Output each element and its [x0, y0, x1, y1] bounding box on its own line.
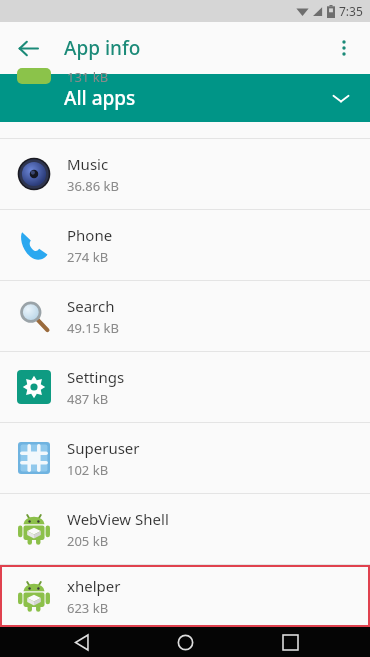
staticText: 102 kB — [67, 461, 109, 479]
staticText: 36.86 kB — [67, 177, 120, 195]
staticText: Phone — [67, 225, 113, 245]
staticText: 205 kB — [67, 532, 109, 550]
staticText: Search — [67, 296, 115, 316]
staticText: 487 kB — [67, 390, 109, 408]
staticText: All apps — [64, 85, 136, 111]
button[interactable]: Settings — [0, 352, 370, 422]
button[interactable]: WebView Shell — [0, 494, 370, 564]
staticText: 7:35 — [339, 3, 363, 19]
button[interactable]: More options — [324, 28, 364, 68]
button[interactable]: Music — [0, 139, 370, 209]
button[interactable]: Superuser — [0, 423, 370, 493]
staticText: WebView Shell — [67, 509, 169, 529]
button[interactable]: xhelper — [0, 565, 370, 627]
staticText: 623 kB — [67, 599, 109, 617]
staticText: xhelper — [67, 576, 121, 596]
staticText: App info — [64, 35, 141, 61]
staticText: 131 kB — [67, 68, 109, 84]
button[interactable]: Search — [0, 281, 370, 351]
staticText: 274 kB — [67, 248, 109, 266]
button[interactable]: Back — [57, 627, 105, 657]
button[interactable]: Phone — [0, 210, 370, 280]
button[interactable]: Home — [161, 627, 209, 657]
staticText: Superuser — [67, 438, 140, 458]
button[interactable]: Recent apps — [266, 627, 314, 657]
staticText: Music — [67, 154, 109, 174]
staticText: 49.15 kB — [67, 319, 120, 337]
staticText: Settings — [67, 367, 125, 387]
button[interactable]: All apps — [0, 74, 370, 122]
button[interactable]: Back — [8, 28, 48, 68]
